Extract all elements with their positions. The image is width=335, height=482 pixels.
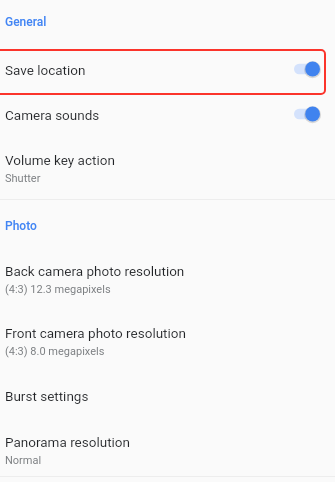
staticText: Save location bbox=[5, 62, 86, 78]
staticText: Front camera photo resolution bbox=[5, 325, 186, 341]
button[interactable]: Burst settings bbox=[0, 371, 335, 415]
staticText: Volume key action bbox=[5, 152, 115, 168]
button[interactable]: Front camera photo resolution bbox=[0, 305, 335, 371]
staticText: Camera sounds bbox=[5, 107, 100, 123]
button[interactable]: Save location bbox=[0, 49, 335, 95]
button[interactable]: Volume key action bbox=[0, 139, 335, 199]
button[interactable]: Camera sounds bbox=[294, 105, 320, 123]
staticText: Shutter bbox=[5, 172, 41, 185]
staticText: Burst settings bbox=[5, 388, 89, 404]
staticText: Panorama resolution bbox=[5, 434, 130, 450]
staticText: Photo bbox=[5, 219, 37, 233]
button[interactable]: Camera sounds bbox=[0, 95, 335, 139]
staticText: (4:3) 8.0 megapixels bbox=[5, 345, 105, 358]
staticText: Back camera photo resolution bbox=[5, 263, 185, 279]
staticText: Normal bbox=[5, 454, 42, 467]
staticText: (4:3) 12.3 megapixels bbox=[5, 283, 111, 296]
button[interactable]: Save location bbox=[294, 60, 320, 78]
button[interactable]: Back camera photo resolution bbox=[0, 243, 335, 305]
staticText: General bbox=[5, 15, 47, 29]
button[interactable]: Panorama resolution bbox=[0, 415, 335, 477]
